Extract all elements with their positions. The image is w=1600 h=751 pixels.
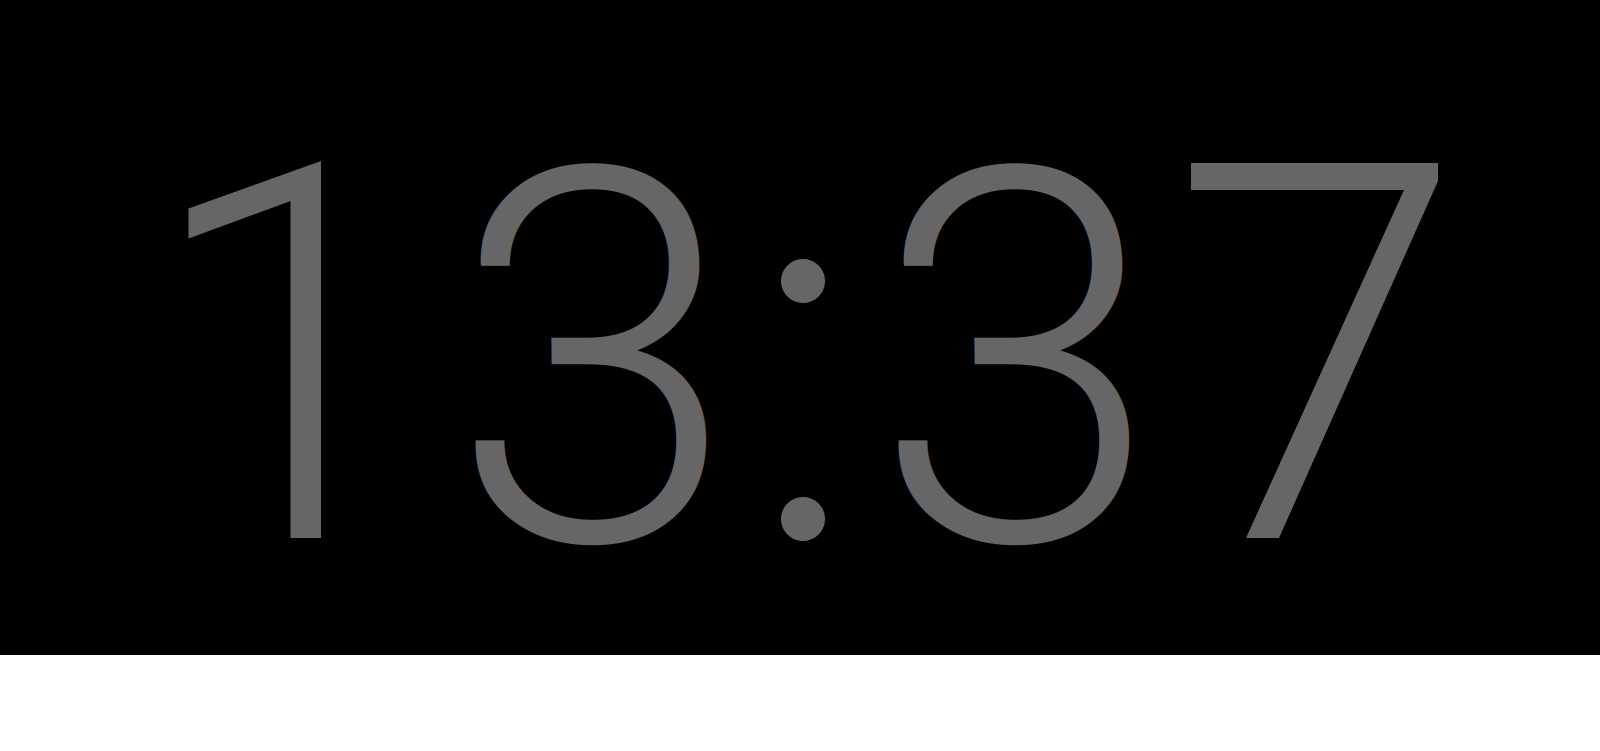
staticText: 3 xyxy=(449,0,737,746)
staticText: 3 xyxy=(872,0,1160,746)
